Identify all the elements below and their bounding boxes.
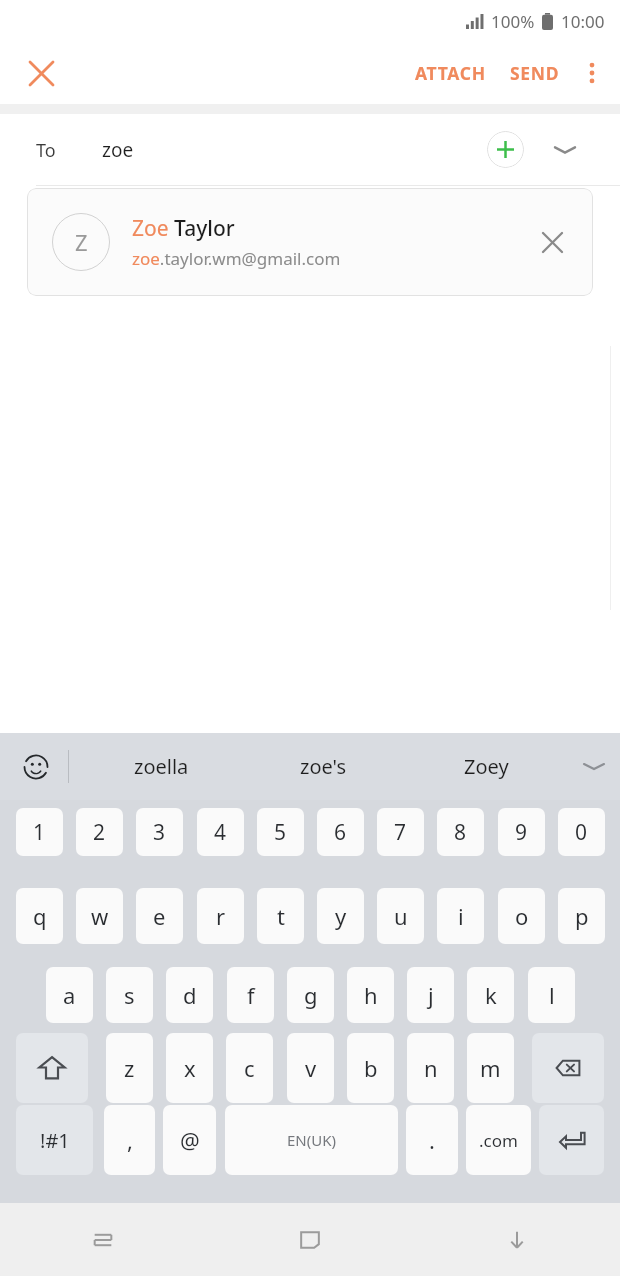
button[interactable]: Shift [16, 1033, 88, 1103]
staticText: 1 [33, 818, 46, 847]
button[interactable]: EN(UK) [225, 1105, 398, 1175]
button[interactable]: Zoey [405, 733, 568, 800]
button[interactable]: 6 [317, 808, 364, 856]
button[interactable]: Z [27, 188, 593, 296]
button[interactable]: !#1 [16, 1105, 93, 1175]
button[interactable]: f [227, 967, 274, 1023]
button[interactable]: Emoji [10, 733, 62, 800]
button[interactable]: 2 [76, 808, 123, 856]
button[interactable]: Collapse suggestions [568, 733, 620, 800]
staticText: i [458, 901, 464, 931]
button[interactable]: ATTACH [407, 52, 494, 94]
button[interactable]: r [197, 888, 244, 944]
button[interactable]: zoella [80, 733, 242, 800]
button[interactable]: x [166, 1033, 213, 1103]
button[interactable]: i [437, 888, 484, 944]
button[interactable]: u [377, 888, 424, 944]
staticText: SEND [510, 61, 560, 85]
button[interactable]: n [407, 1033, 454, 1103]
staticText: .com [479, 1129, 518, 1152]
staticText: , [127, 1125, 133, 1155]
button[interactable]: 1 [16, 808, 63, 856]
staticText: s [124, 980, 135, 1010]
button[interactable]: y [317, 888, 364, 944]
button[interactable]: 5 [257, 808, 304, 856]
staticText: To [36, 138, 56, 163]
button[interactable]: e [136, 888, 183, 944]
button[interactable]: Add recipient [487, 131, 524, 168]
staticText: 7 [394, 818, 407, 847]
staticText: t [277, 901, 285, 931]
staticText: y [335, 901, 347, 931]
button[interactable]: o [498, 888, 545, 944]
staticText: 5 [274, 818, 287, 847]
staticText: Z [75, 227, 88, 257]
button[interactable]: Home [206, 1203, 413, 1276]
button[interactable]: w [76, 888, 123, 944]
button[interactable]: g [287, 967, 334, 1023]
button[interactable]: p [558, 888, 605, 944]
staticText: p [575, 901, 589, 931]
staticText: n [424, 1053, 438, 1083]
staticText: h [364, 980, 378, 1010]
staticText: o [515, 901, 529, 931]
staticText: 8 [454, 818, 467, 847]
staticText: zoella [134, 753, 189, 780]
staticText: 6 [334, 818, 347, 847]
staticText: . [429, 1125, 435, 1155]
button[interactable]: z [106, 1033, 153, 1103]
staticText: u [394, 901, 408, 931]
button[interactable]: c [226, 1033, 273, 1103]
button[interactable]: Recents [0, 1203, 206, 1276]
button[interactable]: Expand recipients [541, 126, 589, 174]
staticText: 3 [153, 818, 166, 847]
button[interactable]: q [16, 888, 63, 944]
button[interactable]: 0 [558, 808, 605, 856]
button[interactable]: Close [13, 42, 69, 104]
button[interactable]: v [287, 1033, 334, 1103]
staticText: 100% [491, 10, 535, 33]
button[interactable]: Enter [539, 1105, 604, 1175]
staticText: ATTACH [415, 61, 486, 85]
button[interactable]: k [467, 967, 514, 1023]
staticText: x [184, 1053, 196, 1083]
button[interactable]: 8 [437, 808, 484, 856]
button[interactable]: . [406, 1105, 458, 1175]
button[interactable]: d [166, 967, 213, 1023]
staticText: c [244, 1053, 255, 1083]
button[interactable]: 9 [498, 808, 545, 856]
button[interactable]: SEND [502, 52, 568, 94]
staticText: Zoe Taylor [132, 214, 235, 243]
button[interactable]: 4 [197, 808, 244, 856]
button[interactable]: 7 [377, 808, 424, 856]
staticText: !#1 [40, 1127, 70, 1154]
button[interactable]: , [104, 1105, 155, 1175]
staticText: @ [180, 1125, 200, 1155]
button[interactable]: zoe's [242, 733, 405, 800]
button[interactable]: l [528, 967, 575, 1023]
staticText: d [183, 980, 197, 1010]
staticText: q [33, 901, 47, 931]
button[interactable]: Hide keyboard [413, 1203, 620, 1276]
button[interactable]: m [467, 1033, 514, 1103]
button[interactable]: More options [568, 49, 616, 97]
button[interactable]: Remove recipient [531, 221, 573, 263]
button[interactable]: 3 [136, 808, 183, 856]
staticText: f [247, 980, 255, 1010]
staticText: j [428, 980, 434, 1010]
button[interactable]: s [106, 967, 153, 1023]
staticText: w [91, 901, 109, 931]
staticText: l [549, 980, 555, 1010]
button[interactable]: @ [163, 1105, 216, 1175]
button[interactable]: b [347, 1033, 394, 1103]
button[interactable]: a [46, 967, 93, 1023]
button[interactable]: .com [466, 1105, 531, 1175]
staticText: 10:00 [561, 10, 605, 33]
staticText: r [216, 901, 226, 931]
button[interactable]: Backspace [532, 1033, 604, 1103]
staticText: 4 [214, 818, 227, 847]
button[interactable]: j [407, 967, 454, 1023]
staticText: m [480, 1053, 501, 1083]
button[interactable]: t [257, 888, 304, 944]
button[interactable]: h [347, 967, 394, 1023]
